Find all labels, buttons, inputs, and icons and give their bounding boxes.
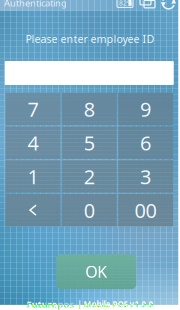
staticText: pos [57,298,74,310]
staticText: 9 [140,96,151,122]
staticText: 3 [140,163,151,190]
button[interactable]: 2 [62,160,117,193]
button[interactable]: 9 [118,93,173,125]
staticText: 0 [84,197,95,223]
staticText: | Mobile POS v1.0.0 [77,299,153,309]
button[interactable]: 7 [5,93,60,125]
staticText: 5 [84,129,95,156]
staticText: 1 [27,163,38,190]
staticText: Future [26,298,57,310]
staticText: Please enter employee ID [25,32,154,46]
staticText: 4 [27,129,38,156]
staticText: 2 [84,163,95,190]
button[interactable]: 0 [62,194,117,226]
staticText: 8 [84,96,95,122]
staticText: Authenticating [4,0,67,9]
staticText: 00 [135,197,157,223]
button[interactable]: 8 [62,93,117,125]
button[interactable]: OK [56,254,136,289]
button[interactable]: 3 [118,160,173,193]
staticText: OK [85,261,107,282]
button[interactable]: 6 [118,126,173,159]
staticText: 82% [119,0,133,7]
button[interactable]: 5 [62,126,117,159]
button[interactable]: 1 [5,160,60,193]
staticText: 6 [140,129,151,156]
button[interactable]: 00 [118,194,173,226]
button[interactable]: 4 [5,126,60,159]
staticText: 7 [27,96,38,122]
button[interactable]: Backspace [5,194,60,226]
